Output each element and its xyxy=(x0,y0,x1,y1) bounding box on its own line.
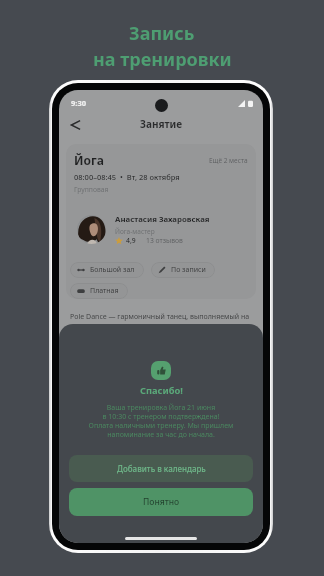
button[interactable]: По записи xyxy=(151,262,215,278)
staticText: Добавить в календарь xyxy=(117,463,206,474)
staticText: 08:00–08:45 • Вт, 28 октября xyxy=(74,172,180,182)
staticText: Большой зал xyxy=(90,265,135,275)
staticText: Запись xyxy=(129,21,195,46)
staticText: Йога-мастер xyxy=(115,227,155,236)
staticText: 4,9 xyxy=(126,236,136,245)
button[interactable]: Понятно xyxy=(69,488,253,516)
staticText: Ещё 2 места xyxy=(209,156,248,165)
staticText: По записи xyxy=(171,265,206,275)
button[interactable]: Платная xyxy=(70,283,128,299)
button[interactable]: Добавить в календарь xyxy=(69,455,253,482)
staticText: Спасибо! xyxy=(140,384,183,397)
button[interactable]: Back xyxy=(64,114,86,136)
staticText: Йога xyxy=(74,152,104,168)
staticText: Платная xyxy=(90,286,119,296)
staticText: Занятие xyxy=(140,117,183,131)
staticText: Ваша тренировка Йога 21 июня в 10:30 с т… xyxy=(69,403,253,439)
staticText: Понятно xyxy=(143,496,180,508)
button[interactable]: Анастасия Захаровская xyxy=(77,214,256,245)
staticText: 9:30 xyxy=(71,98,86,108)
staticText: Pole Dance — гармоничный танец, выполняе… xyxy=(70,312,250,322)
staticText: Групповая xyxy=(74,185,109,194)
staticText: на тренировки xyxy=(93,47,232,72)
staticText: Анастасия Захаровская xyxy=(115,214,210,225)
staticText: 13 отзывов xyxy=(146,236,183,245)
button[interactable]: Большой зал xyxy=(70,262,144,278)
